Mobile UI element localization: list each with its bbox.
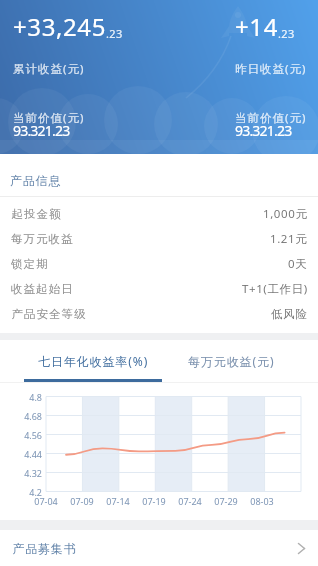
staticText: 七日年化收益率(%): [38, 353, 149, 369]
staticText: 07-24: [172, 495, 208, 507]
staticText: 1,000元: [263, 206, 308, 222]
staticText: 每万元收益(元): [188, 353, 275, 369]
staticText: 4.32: [0, 467, 42, 479]
staticText: +33,245: [13, 10, 106, 43]
staticText: 当前价值(元): [13, 110, 85, 126]
staticText: 产品募集书: [12, 541, 76, 556]
staticText: T+1(工作日): [242, 281, 308, 297]
staticText: .23: [106, 26, 123, 41]
button[interactable]: 每万元收益(元): [162, 340, 300, 382]
staticText: 0天: [288, 256, 308, 272]
staticText: 4.44: [0, 448, 42, 460]
staticText: +14: [235, 10, 278, 43]
staticText: 低风险: [271, 307, 308, 321]
staticText: 07-29: [208, 495, 244, 507]
staticText: 4.8: [0, 391, 42, 403]
staticText: 起投金额: [11, 207, 61, 221]
staticText: 累计收益(元): [13, 61, 85, 77]
staticText: 07-04: [28, 495, 64, 507]
staticText: 昨日收益(元): [235, 61, 307, 77]
button[interactable]: 七日年化收益率(%): [24, 340, 162, 382]
other: Open: [298, 543, 305, 554]
staticText: 收益起始日: [11, 282, 74, 296]
staticText: 产品信息: [10, 173, 62, 188]
staticText: 93.321.23: [13, 121, 70, 140]
staticText: 1.21元: [270, 231, 308, 247]
staticText: .23: [278, 26, 295, 41]
staticText: 当前价值(元): [235, 110, 307, 126]
staticText: 07-14: [100, 495, 136, 507]
staticText: 07-19: [136, 495, 172, 507]
button[interactable]: 产品募集书: [0, 530, 318, 566]
staticText: 08-03: [244, 495, 280, 507]
staticText: 07-09: [64, 495, 100, 507]
staticText: 每万元收益: [11, 232, 74, 246]
staticText: 产品安全等级: [11, 307, 86, 321]
staticText: 4.56: [0, 429, 42, 441]
staticText: 4.68: [0, 410, 42, 422]
staticText: 锁定期: [11, 257, 49, 271]
staticText: 93.321.23: [235, 121, 292, 140]
staticText: 4.2: [0, 486, 42, 498]
